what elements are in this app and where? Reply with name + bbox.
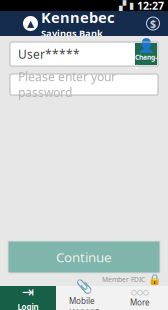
staticText: Member FDIC <box>102 275 145 284</box>
button[interactable]: 📎 <box>56 286 112 310</box>
staticText: ▮ <box>129 0 134 11</box>
staticText: ⇥ <box>22 284 34 300</box>
staticText: 🔒 <box>148 273 161 286</box>
staticText: ▞ <box>119 0 126 11</box>
staticText: 12:27 <box>137 0 164 13</box>
staticText: More <box>130 297 150 308</box>
staticText: Login <box>17 301 38 310</box>
staticText: Change <box>135 53 157 70</box>
staticText: Mobile Deposit <box>69 295 99 310</box>
staticText: ▲ <box>27 18 34 29</box>
staticText: 👤 <box>137 37 154 53</box>
staticText: Please enter your password <box>18 69 116 100</box>
button[interactable]: ⇥ <box>0 286 56 310</box>
staticText: ○○○ <box>131 288 149 296</box>
staticText: Kennebec <box>41 8 115 27</box>
staticText: Continue <box>56 248 112 266</box>
button[interactable]: 👤 <box>135 43 157 65</box>
button[interactable]: Rates <box>138 11 168 36</box>
staticText: User***** <box>18 46 80 62</box>
staticText: Savings Bank <box>41 27 103 39</box>
button[interactable]: Continue <box>8 241 160 273</box>
staticText: 📎 <box>75 279 92 294</box>
staticText: $ <box>150 16 156 31</box>
button[interactable]: ○○○ <box>112 286 168 310</box>
